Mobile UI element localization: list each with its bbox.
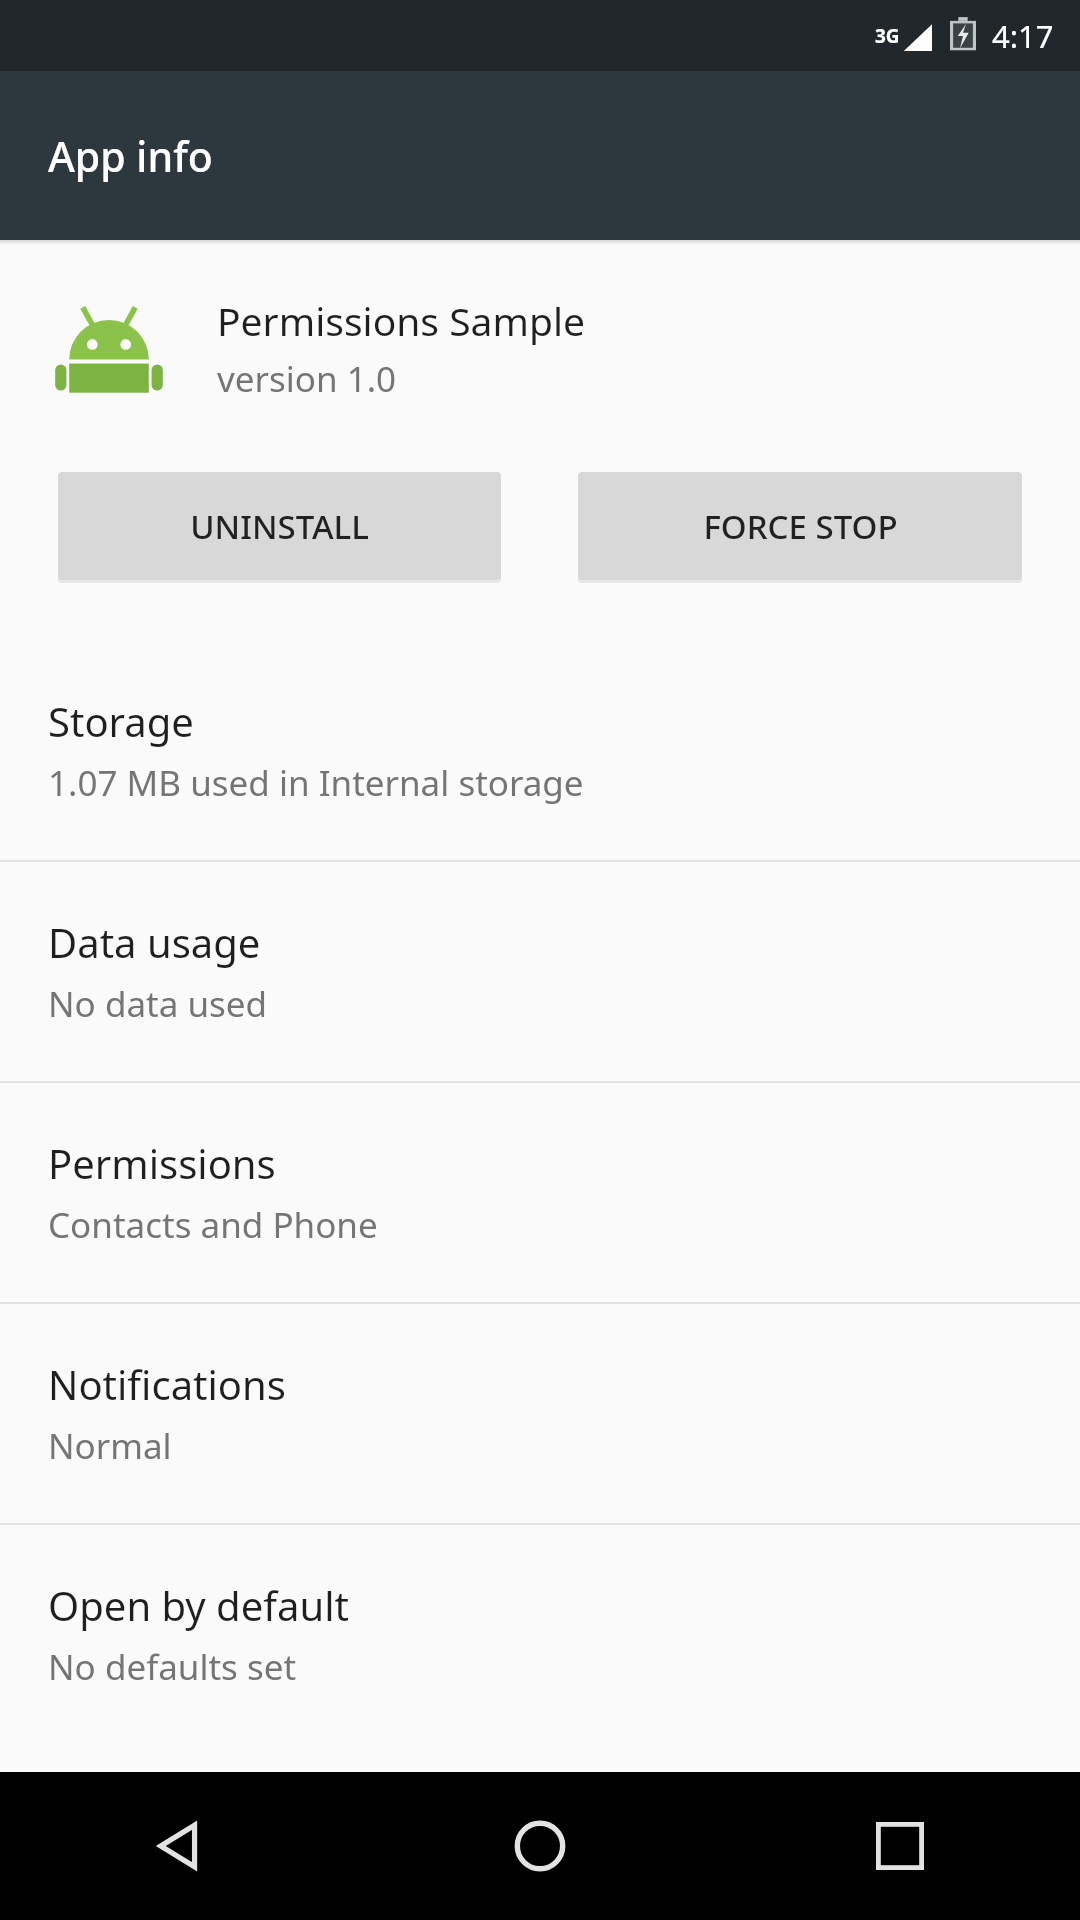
button[interactable]: Home xyxy=(360,1772,720,1920)
staticText: Contacts and Phone xyxy=(48,1201,378,1249)
staticText: Permissions Sample xyxy=(217,294,585,347)
button[interactable]: Notifications xyxy=(0,1304,1080,1523)
button[interactable]: Back xyxy=(0,1772,360,1920)
staticText: 4:17 xyxy=(992,15,1054,57)
staticText: 3G xyxy=(875,23,900,49)
staticText: App info xyxy=(48,128,213,184)
button[interactable]: Data usage xyxy=(0,862,1080,1081)
button[interactable]: Storage xyxy=(0,641,1080,860)
staticText: UNINSTALL xyxy=(190,504,369,549)
staticText: Permissions xyxy=(48,1136,276,1190)
button[interactable]: Open by default xyxy=(0,1525,1080,1744)
staticText: FORCE STOP xyxy=(703,504,898,549)
button[interactable]: Permissions xyxy=(0,1083,1080,1302)
staticText: Storage xyxy=(48,694,194,748)
staticText: Data usage xyxy=(48,915,261,969)
staticText: 1.07 MB used in Internal storage xyxy=(48,759,584,807)
staticText: Open by default xyxy=(48,1578,349,1632)
staticText: No data used xyxy=(48,980,268,1028)
staticText: Normal xyxy=(48,1422,172,1470)
button[interactable]: FORCE STOP xyxy=(578,472,1022,580)
staticText: No defaults set xyxy=(48,1643,297,1691)
staticText: Notifications xyxy=(48,1357,286,1411)
button[interactable]: Recent apps xyxy=(720,1772,1080,1920)
button[interactable]: UNINSTALL xyxy=(58,472,501,580)
staticText: version 1.0 xyxy=(217,355,397,403)
